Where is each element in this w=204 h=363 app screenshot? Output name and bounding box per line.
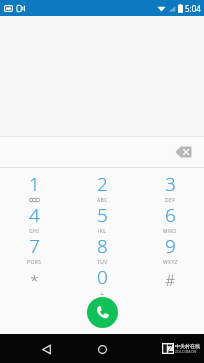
button[interactable]: 1 [0,171,68,202]
staticText: * [30,270,39,290]
staticText: DEF [165,197,176,202]
staticText: TUV [97,259,108,264]
staticText: + [100,290,105,295]
staticText: 5:04 [185,3,201,14]
button[interactable]: 9 [136,233,204,264]
button[interactable]: 2 [68,171,136,202]
button[interactable]: 8 [68,233,136,264]
staticText: 8 [97,233,108,259]
staticText: ZOL.COM.CN [175,349,196,354]
staticText: 4 [29,202,40,228]
staticText: 1 [29,171,40,197]
staticText: JKL [98,228,107,233]
staticText: MNO [163,228,177,233]
staticText: ABC [97,197,108,202]
staticText: GHI [29,228,40,233]
button[interactable]: 0 [68,264,136,295]
staticText: PQRS [27,259,42,264]
button[interactable]: Call [87,297,118,328]
staticText: 7 [29,233,40,259]
button[interactable]: 6 [136,202,204,233]
staticText: 2 [97,171,108,197]
staticText: 6 [165,202,176,228]
button[interactable]: 7 [0,233,68,264]
button[interactable]: Home [92,339,112,359]
button[interactable]: 5 [68,202,136,233]
button[interactable]: Back [36,339,56,359]
button[interactable]: # [136,264,204,295]
staticText: 5 [97,202,108,228]
staticText: 0 [97,264,108,290]
staticText: 9 [165,233,176,259]
staticText: 3 [165,171,176,197]
button[interactable]: * [0,264,68,295]
staticText: # [165,270,175,290]
button[interactable]: Backspace [170,139,196,165]
button[interactable]: 3 [136,171,204,202]
staticText: WXYZ [163,259,178,264]
button[interactable]: 4 [0,202,68,233]
staticText: 中关村在线 [175,343,200,349]
